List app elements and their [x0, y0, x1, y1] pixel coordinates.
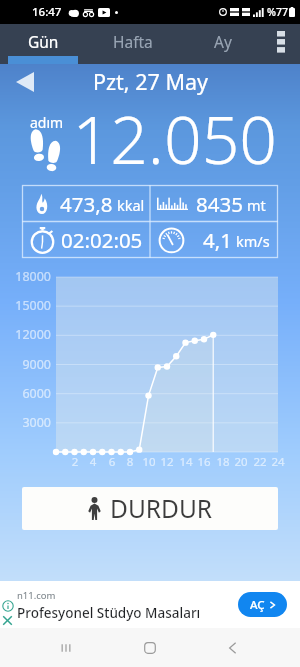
button[interactable]: Recent apps [50, 628, 82, 667]
button[interactable]: DURDUR [22, 487, 278, 530]
staticText: n11.com [17, 589, 56, 602]
staticText: 6 [100, 454, 124, 470]
staticText: 2 [63, 454, 87, 470]
staticText: km/s [236, 231, 270, 251]
button[interactable]: 8435 [150, 185, 278, 222]
staticText: Pzt, 27 May [93, 67, 208, 96]
staticText: adım [30, 113, 64, 132]
staticText: 10 [137, 454, 161, 470]
button[interactable]: Gün [0, 24, 86, 64]
staticText: 18000 [0, 268, 51, 285]
staticText: 4,1 [203, 226, 232, 254]
staticText: 14 [174, 454, 198, 470]
staticText: 12000 [0, 326, 51, 343]
button[interactable]: Ay [179, 24, 267, 64]
staticText: kkal [117, 195, 145, 215]
staticText: 8 [118, 454, 142, 470]
staticText: 02:02:05 [61, 226, 143, 254]
staticText: 8435 [196, 190, 243, 218]
staticText: %77 [267, 5, 288, 19]
button[interactable]: Previous day [9, 66, 41, 98]
staticText: Ay [214, 31, 232, 52]
staticText: 15000 [0, 297, 51, 314]
button[interactable]: Back [216, 628, 248, 667]
staticText: 22 [248, 454, 272, 470]
staticText: 20 [229, 454, 253, 470]
staticText: 12.050 [70, 93, 277, 175]
button[interactable]: More options [265, 24, 297, 64]
staticText: AÇ [250, 597, 265, 613]
button[interactable]: Hafta [87, 24, 179, 64]
button[interactable]: 4,1 [150, 221, 278, 258]
staticText: 16:47 [32, 4, 62, 20]
staticText: 9000 [0, 356, 51, 373]
button[interactable]: 02:02:05 [22, 221, 150, 258]
button[interactable]: 473,8 [22, 185, 150, 222]
staticText: 16 [192, 454, 216, 470]
staticText: 473,8 [60, 190, 113, 218]
button[interactable]: Home [134, 628, 166, 667]
staticText: DURDUR [110, 492, 213, 525]
staticText: 4 [81, 454, 105, 470]
button[interactable]: AÇ [238, 592, 287, 617]
staticText: Gün [28, 31, 59, 52]
staticText: 18 [211, 454, 235, 470]
staticText: Profesyonel Stüdyo Masaları [17, 604, 201, 622]
staticText: 6000 [0, 385, 51, 402]
staticText: 24 [266, 454, 290, 470]
staticText: Hafta [113, 31, 153, 52]
staticText: 3000 [0, 414, 51, 431]
staticText: 12 [155, 454, 179, 470]
staticText: mt [247, 195, 266, 215]
